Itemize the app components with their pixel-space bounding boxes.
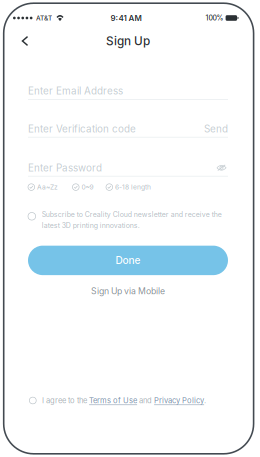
staticText: 6-18 length [115,183,151,191]
staticText: and [137,396,154,405]
staticText: AT&T [36,14,52,22]
button[interactable]: Terms of Use [89,396,137,405]
staticText: Aa~Zz [37,183,58,191]
staticText: Enter Verification code [28,123,136,135]
button[interactable]: Agree to terms [28,395,38,406]
staticText: Sign Up via Mobile [91,286,165,296]
button[interactable]: Done [28,246,228,275]
staticText: I agree to the [42,396,89,405]
staticText: Privacy Policy [154,396,204,405]
button[interactable]: Subscribe to newsletter [28,210,36,222]
staticText: 0~9 [81,183,93,191]
staticText: Enter Password [28,162,102,174]
staticText: Sign Up [106,34,150,48]
staticText: . [204,396,206,405]
staticText: Done [115,254,140,267]
staticText: 9:41 AM [110,13,141,23]
button[interactable]: Back [12,31,38,51]
staticText: Enter Email Address [28,85,123,97]
button[interactable]: Sign Up via Mobile [91,285,165,298]
staticText: Subscribe to Creality Cloud newsletter a… [42,210,222,230]
staticText: Terms of Use [89,396,137,405]
button[interactable]: Privacy Policy [154,396,204,405]
button[interactable]: Send [204,121,228,137]
staticText: Send [204,123,228,135]
button[interactable]: Show password [215,160,228,176]
staticText: 100% [206,14,224,22]
